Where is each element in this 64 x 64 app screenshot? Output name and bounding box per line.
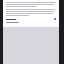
other: Open attachment — [54, 18, 56, 20]
button[interactable]: Open attachment — [6, 18, 56, 20]
